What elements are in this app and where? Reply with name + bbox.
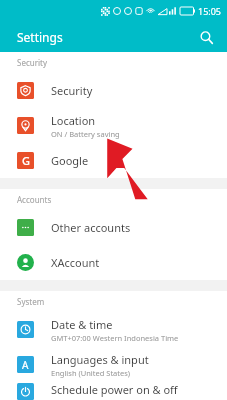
staticText: Google bbox=[51, 153, 89, 168]
button[interactable]: Location bbox=[0, 108, 227, 143]
staticText: ON / Battery saving bbox=[51, 129, 120, 139]
button[interactable]: Schedule power on & off bbox=[0, 382, 227, 400]
button[interactable]: Search bbox=[194, 25, 218, 49]
staticText: Schedule power on & off bbox=[51, 382, 178, 397]
staticText: English (United States) bbox=[51, 368, 131, 378]
staticText: G bbox=[22, 153, 30, 168]
staticText: Date & time bbox=[51, 317, 113, 332]
staticText: Other accounts bbox=[51, 220, 131, 235]
staticText: Languages & input bbox=[51, 352, 149, 367]
staticText: A bbox=[22, 358, 29, 372]
button[interactable]: XAccount bbox=[0, 245, 227, 280]
staticText: System bbox=[17, 296, 45, 307]
staticText: 15:05 bbox=[198, 5, 222, 17]
staticText: Security bbox=[51, 83, 93, 98]
staticText: Location bbox=[51, 113, 96, 128]
staticText: GMT+07:00 Western Indonesia Time bbox=[51, 333, 179, 343]
button[interactable]: G bbox=[0, 143, 227, 178]
staticText: Security bbox=[17, 57, 48, 68]
button[interactable]: Security bbox=[0, 73, 227, 108]
staticText: XAccount bbox=[51, 255, 100, 270]
button[interactable]: Date & time bbox=[0, 312, 227, 347]
staticText: Accounts bbox=[17, 194, 52, 205]
staticText: Settings bbox=[17, 29, 63, 45]
button[interactable]: A bbox=[0, 347, 227, 382]
button[interactable]: Other accounts bbox=[0, 210, 227, 245]
